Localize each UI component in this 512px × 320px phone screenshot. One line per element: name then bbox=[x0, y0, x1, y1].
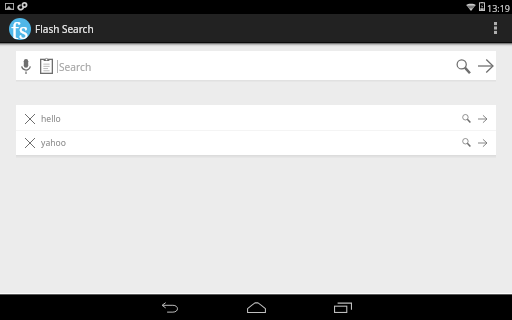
button[interactable]: Search yahoo bbox=[456, 131, 476, 154]
button[interactable]: Voice search bbox=[16, 51, 496, 80]
staticText: fs bbox=[11, 18, 29, 39]
staticText: Search bbox=[59, 60, 92, 74]
button[interactable]: Use yahoo bbox=[472, 131, 492, 154]
button[interactable]: Search hello bbox=[456, 107, 476, 130]
button[interactable]: More options bbox=[484, 14, 506, 42]
button[interactable]: Recent apps bbox=[315, 294, 371, 320]
button[interactable]: Search bbox=[451, 54, 475, 78]
button[interactable]: Remove hello bbox=[16, 107, 496, 130]
button[interactable]: Remove yahoo bbox=[19, 131, 41, 154]
staticText: hello bbox=[41, 113, 61, 125]
button[interactable]: Remove yahoo bbox=[16, 131, 496, 154]
staticText: 13:19 bbox=[487, 2, 511, 14]
button[interactable]: Use hello bbox=[472, 107, 492, 130]
staticText: yahoo bbox=[41, 137, 66, 149]
button[interactable]: Voice search bbox=[15, 54, 37, 78]
button[interactable]: Go bbox=[473, 54, 497, 78]
staticText: Flash Search bbox=[35, 22, 94, 36]
button[interactable]: Home bbox=[228, 294, 284, 320]
button[interactable]: Paste from clipboard bbox=[34, 53, 58, 77]
button[interactable]: Back bbox=[142, 294, 198, 320]
button[interactable]: Remove hello bbox=[19, 107, 41, 130]
